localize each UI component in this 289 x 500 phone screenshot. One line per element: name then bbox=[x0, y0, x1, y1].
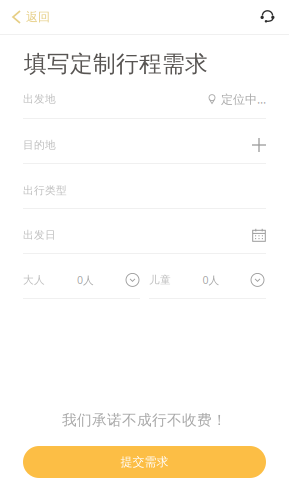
staticText: 填写定制行程需求 bbox=[24, 50, 208, 78]
button[interactable]: 返回 bbox=[0, 0, 62, 34]
button[interactable]: 出发日 bbox=[23, 209, 266, 254]
button[interactable]: 儿童 bbox=[149, 254, 266, 298]
staticText: 大人 bbox=[23, 273, 45, 286]
staticText: 出行类型 bbox=[23, 184, 67, 197]
staticText: 定位中... bbox=[221, 91, 266, 107]
staticText: 返回 bbox=[26, 10, 50, 24]
button[interactable]: 出行类型 bbox=[23, 164, 266, 209]
button[interactable]: 提交需求 bbox=[23, 446, 266, 478]
staticText: 我们承诺不成行不收费！ bbox=[62, 411, 227, 429]
button[interactable]: 联系客服 bbox=[260, 0, 289, 34]
staticText: 0人 bbox=[202, 273, 219, 287]
staticText: 提交需求 bbox=[120, 455, 168, 469]
button[interactable]: 大人 bbox=[23, 254, 140, 298]
staticText: 儿童 bbox=[149, 273, 171, 286]
staticText: 目的地 bbox=[23, 138, 56, 151]
staticText: 0人 bbox=[77, 273, 94, 287]
button[interactable]: 目的地 bbox=[23, 119, 266, 164]
button[interactable]: 出发地 bbox=[23, 74, 266, 119]
staticText: 出发地 bbox=[23, 92, 56, 106]
staticText: 出发日 bbox=[23, 228, 56, 241]
